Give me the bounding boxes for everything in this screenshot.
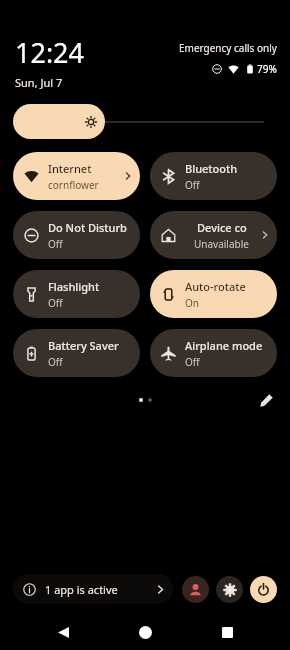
button[interactable]: Bluetooth bbox=[150, 152, 277, 200]
button[interactable]: Flashlight bbox=[13, 270, 140, 318]
staticText: Do Not Disturb bbox=[48, 220, 127, 235]
staticText: Off bbox=[48, 296, 63, 310]
button[interactable]: Do Not Disturb bbox=[13, 211, 140, 259]
staticText: Battery Saver bbox=[48, 338, 119, 353]
button[interactable]: Battery Saver bbox=[13, 329, 140, 377]
button[interactable]: Internet bbox=[13, 152, 140, 200]
staticText: Flashlight bbox=[48, 279, 100, 294]
button[interactable]: Settings bbox=[216, 576, 243, 603]
staticText: Device co bbox=[197, 220, 247, 235]
button[interactable]: Device co bbox=[150, 211, 277, 259]
staticText: Emergency calls only bbox=[179, 41, 277, 55]
staticText: Unavailable bbox=[194, 237, 249, 251]
button[interactable]: Recent apps bbox=[214, 619, 240, 645]
button[interactable]: Power bbox=[250, 576, 277, 603]
staticText: Off bbox=[48, 237, 63, 251]
staticText: cornflower bbox=[48, 178, 99, 192]
staticText: Auto-rotate bbox=[185, 279, 246, 294]
staticText: Off bbox=[185, 178, 200, 192]
staticText: 79% bbox=[257, 62, 277, 76]
staticText: 12:24 bbox=[15, 34, 85, 71]
staticText: Internet bbox=[48, 161, 92, 176]
button[interactable]: Auto-rotate bbox=[150, 270, 277, 318]
button[interactable]: Airplane mode bbox=[150, 329, 277, 377]
staticText: Off bbox=[185, 355, 200, 369]
button[interactable]: Brightness bbox=[13, 104, 277, 139]
staticText: Airplane mode bbox=[185, 338, 263, 353]
button[interactable]: 1 app is active bbox=[13, 574, 173, 604]
staticText: On bbox=[185, 296, 199, 310]
staticText: Off bbox=[48, 355, 63, 369]
staticText: Bluetooth bbox=[185, 161, 238, 176]
button[interactable]: User profile bbox=[182, 576, 209, 603]
button[interactable]: Home bbox=[132, 619, 158, 645]
staticText: Sun, Jul 7 bbox=[15, 75, 63, 90]
button[interactable]: Back bbox=[50, 619, 76, 645]
button[interactable]: Edit tiles bbox=[255, 389, 277, 411]
staticText: 1 app is active bbox=[45, 582, 118, 597]
